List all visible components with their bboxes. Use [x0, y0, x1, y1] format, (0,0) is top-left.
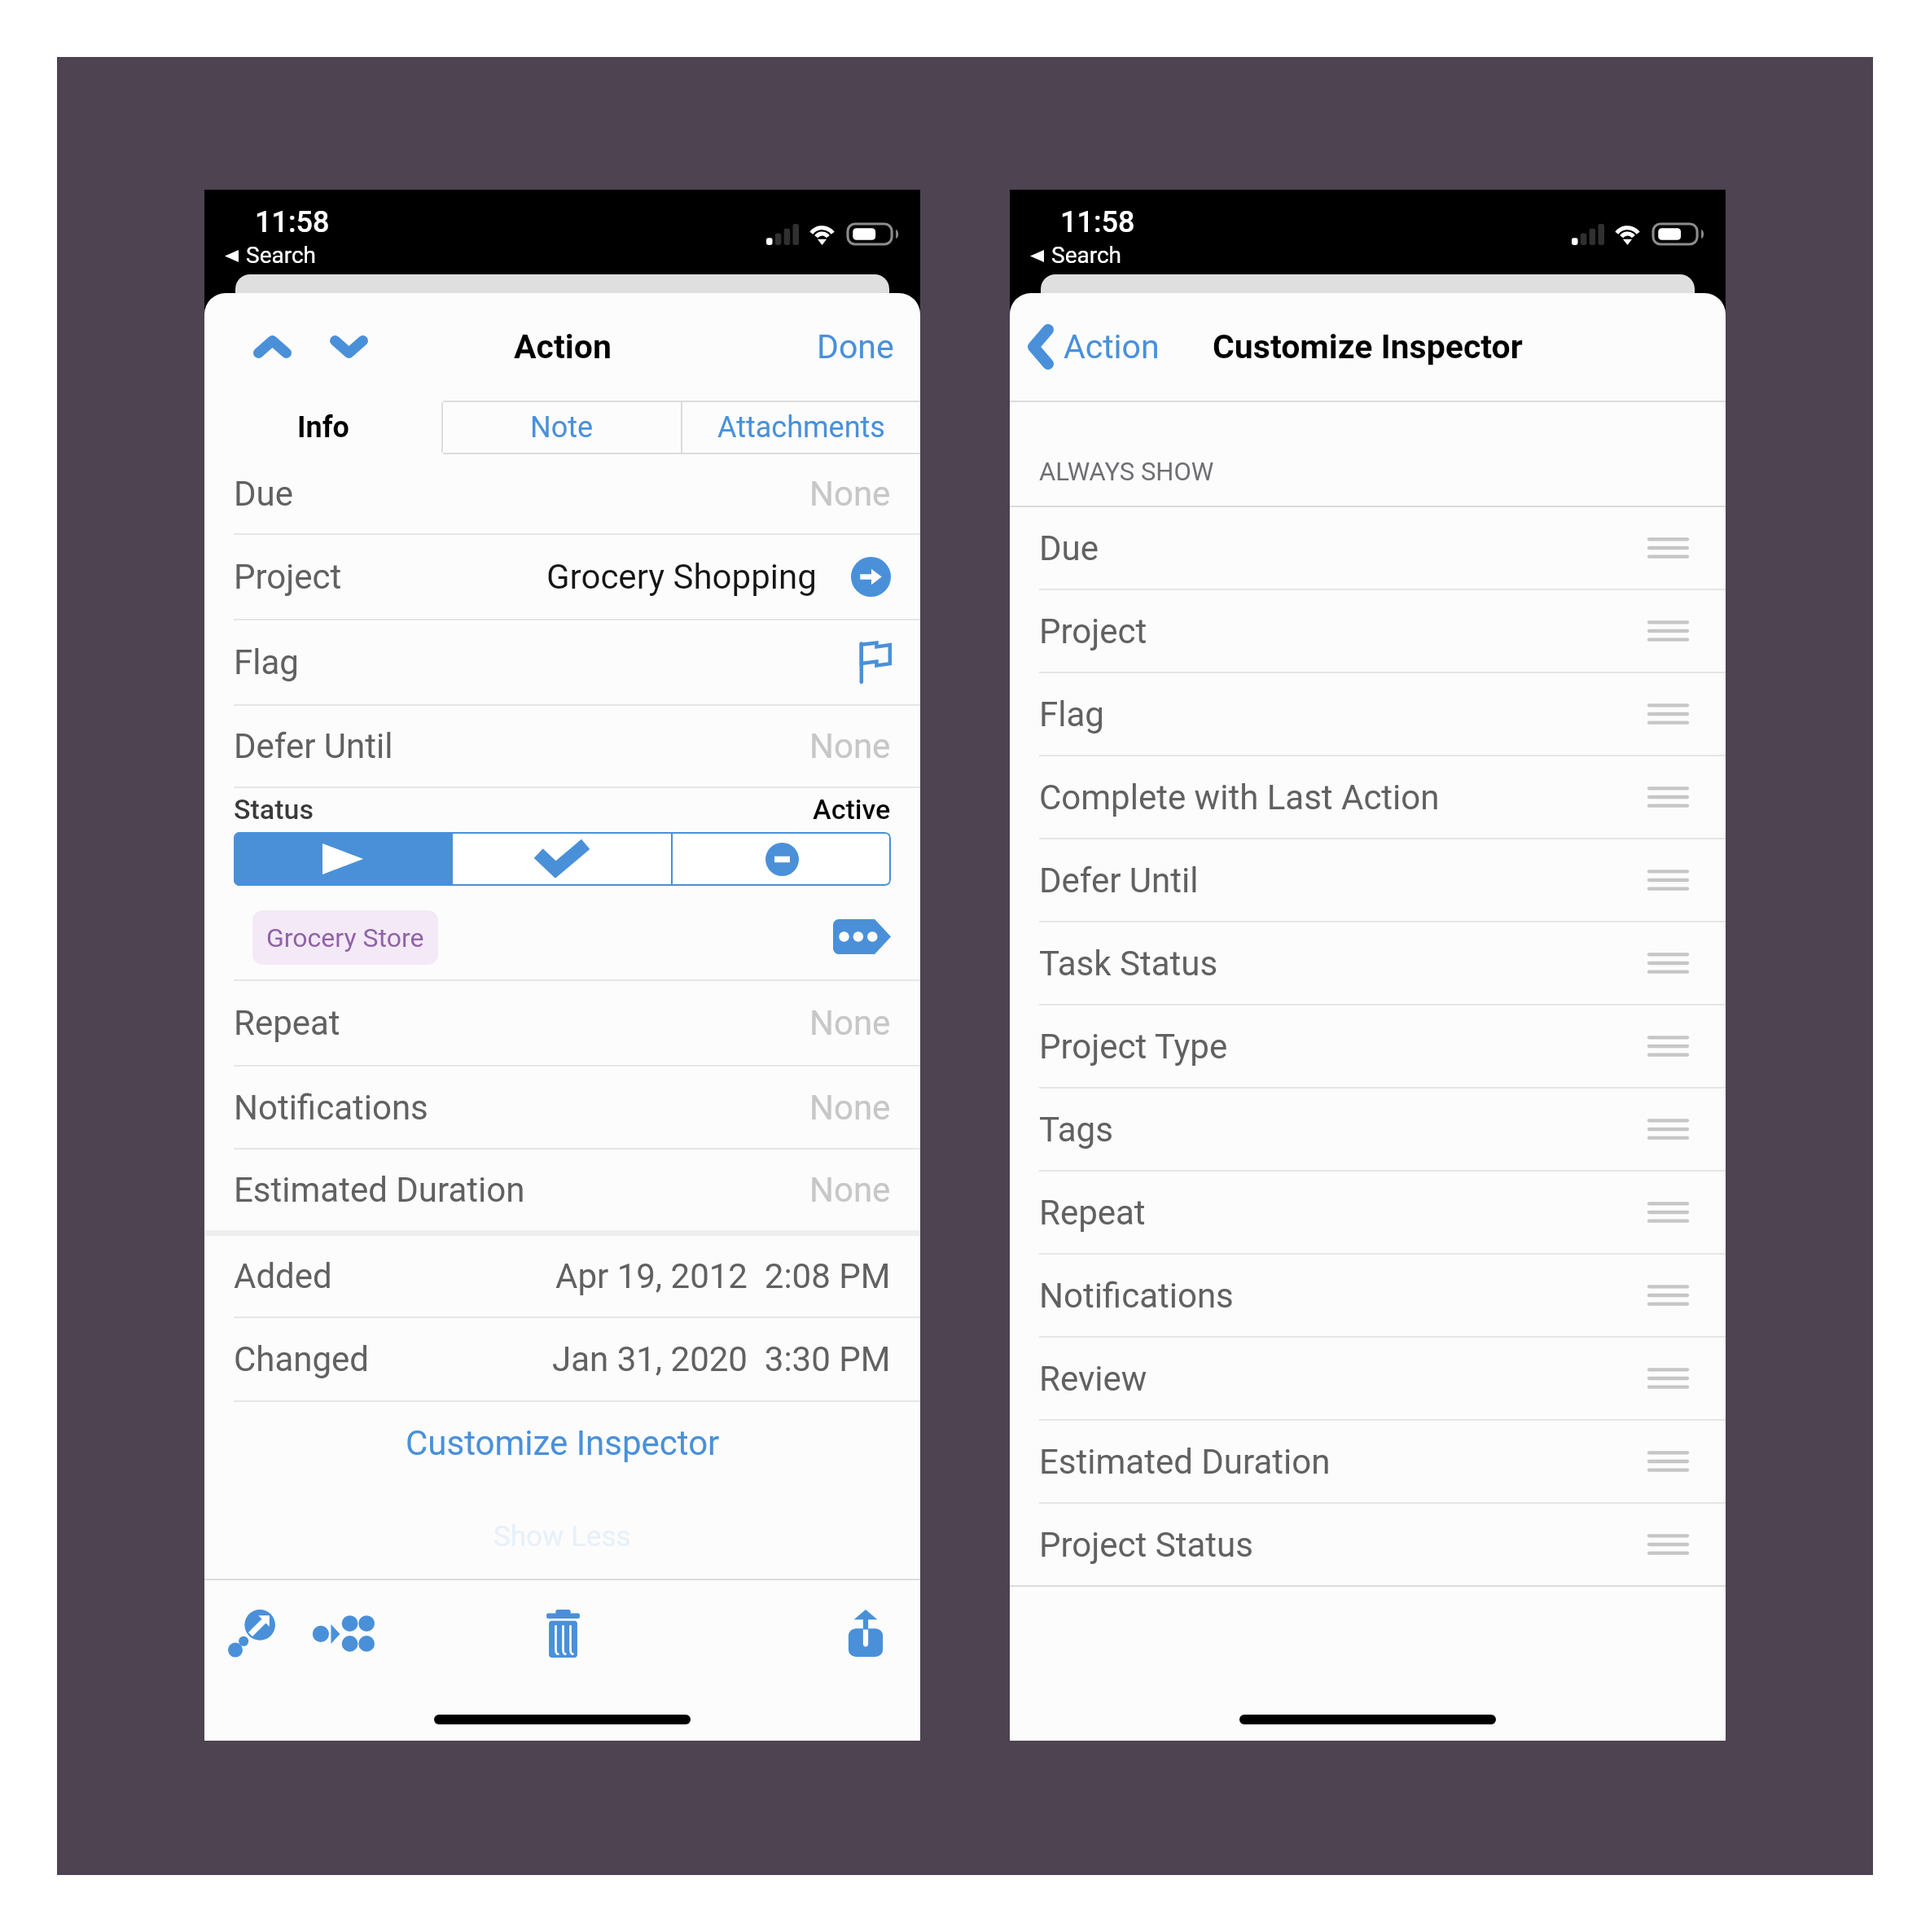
button[interactable]: Notifications	[1010, 1255, 1726, 1336]
staticText: Action	[514, 327, 612, 366]
staticText: Jan 31, 2020 3:30 PM	[552, 1339, 891, 1379]
staticText: Due	[234, 474, 293, 514]
button[interactable]: Changed	[204, 1318, 920, 1400]
button[interactable]: Reorder Defer Until	[1639, 852, 1696, 909]
button[interactable]: Repeat	[204, 981, 920, 1065]
button[interactable]: Estimated Duration	[1010, 1421, 1726, 1502]
button[interactable]: Action	[1010, 306, 1176, 388]
staticText: Flag	[1039, 694, 1104, 734]
staticText: Project	[234, 557, 342, 597]
button[interactable]: Flag	[1010, 673, 1726, 755]
staticText: Estimated Duration	[234, 1170, 525, 1210]
staticText: Project Type	[1039, 1027, 1228, 1067]
staticText: Customize Inspector	[406, 1423, 720, 1463]
staticText: None	[809, 726, 891, 766]
button[interactable]: Completed status	[453, 832, 671, 886]
button[interactable]: Project	[204, 535, 920, 619]
button[interactable]: Delete	[522, 1592, 603, 1674]
button[interactable]: Reorder Due	[1639, 519, 1696, 576]
staticText: ALWAYS SHOW	[1039, 457, 1214, 486]
button[interactable]: Grocery Store	[252, 910, 438, 965]
button[interactable]: Flag	[859, 638, 891, 687]
staticText: Notifications	[1039, 1276, 1234, 1316]
staticText: 11:58	[1060, 205, 1135, 239]
button[interactable]: Task Status	[1010, 922, 1726, 1004]
staticText: Apr 19, 2012 2:08 PM	[555, 1256, 891, 1296]
staticText: Complete with Last Action	[1039, 778, 1440, 817]
staticText: Flag	[234, 642, 299, 682]
button[interactable]: Notifications	[204, 1067, 920, 1148]
staticText: Done	[817, 327, 894, 366]
staticText: Attachments	[717, 410, 885, 445]
staticText: None	[809, 1170, 891, 1210]
button[interactable]: Reorder Complete with Last Action	[1639, 769, 1696, 826]
button[interactable]: Reorder Estimated Duration	[1639, 1433, 1696, 1490]
button[interactable]: Reorder Notifications	[1639, 1267, 1696, 1324]
button[interactable]: Info	[204, 402, 441, 453]
staticText: Action	[1064, 327, 1160, 366]
staticText: Repeat	[234, 1003, 340, 1043]
staticText: Added	[234, 1256, 332, 1296]
staticText: None	[809, 1003, 891, 1043]
staticText: Defer Until	[1039, 861, 1199, 900]
button[interactable]: Dropped status	[673, 832, 891, 886]
button[interactable]: Repeat	[1010, 1172, 1726, 1253]
button[interactable]: Reorder Task Status	[1639, 935, 1696, 992]
staticText: Active	[813, 793, 891, 826]
button[interactable]: Done	[789, 306, 920, 388]
button[interactable]: Reorder Project	[1639, 602, 1696, 659]
button[interactable]: Group	[303, 1592, 384, 1674]
staticText: Estimated Duration	[1039, 1442, 1331, 1482]
staticText: Status	[234, 793, 314, 826]
button[interactable]: Flag	[204, 620, 920, 704]
button[interactable]: Project Type	[1010, 1005, 1726, 1087]
staticText: Task Status	[1039, 944, 1218, 984]
staticText: None	[809, 474, 891, 514]
staticText: Project	[1039, 611, 1147, 651]
button[interactable]: Reorder Project Status	[1639, 1516, 1696, 1573]
staticText: Defer Until	[234, 726, 393, 766]
button[interactable]: Review	[1010, 1338, 1726, 1419]
staticText: Search	[246, 242, 317, 269]
staticText: Grocery Shopping	[546, 557, 817, 597]
button[interactable]: More tags	[833, 919, 891, 954]
button[interactable]: Defer Until	[1010, 839, 1726, 921]
button[interactable]: Share	[825, 1592, 906, 1674]
staticText: Due	[1039, 528, 1099, 568]
button[interactable]: Show Less	[204, 1483, 920, 1576]
button[interactable]: Reorder Flag	[1639, 686, 1696, 743]
button[interactable]: Reorder Tags	[1639, 1101, 1696, 1158]
button[interactable]: Added	[204, 1236, 920, 1316]
staticText: Search	[1051, 242, 1122, 269]
button[interactable]: Note	[443, 402, 681, 453]
staticText: 11:58	[255, 205, 330, 239]
button[interactable]: Attachments	[682, 402, 920, 453]
staticText: Note	[530, 410, 594, 445]
button[interactable]: Move	[211, 1592, 292, 1674]
button[interactable]: Due	[1010, 507, 1726, 589]
button[interactable]: Active status	[234, 832, 451, 886]
button[interactable]: Previous item	[234, 307, 310, 387]
button[interactable]: Reorder Repeat	[1639, 1184, 1696, 1241]
staticText: Changed	[234, 1339, 370, 1379]
button[interactable]: Due	[204, 454, 920, 533]
button[interactable]: Reorder Review	[1639, 1350, 1696, 1407]
staticText: Notifications	[234, 1088, 428, 1128]
button[interactable]: Defer Until	[204, 706, 920, 786]
staticText: Project Status	[1039, 1525, 1253, 1565]
button[interactable]: Complete with Last Action	[1010, 756, 1726, 838]
button[interactable]: Reorder Project Type	[1639, 1018, 1696, 1075]
button[interactable]: Project	[1010, 590, 1726, 672]
button[interactable]: Estimated Duration	[204, 1150, 920, 1230]
button[interactable]: Next item	[310, 307, 387, 387]
staticText: None	[809, 1088, 891, 1128]
staticText: Grocery Store	[266, 922, 424, 953]
staticText: Show Less	[493, 1520, 631, 1553]
button[interactable]: Customize Inspector	[204, 1402, 920, 1483]
staticText: Info	[297, 410, 349, 445]
staticText: Tags	[1039, 1110, 1113, 1150]
button[interactable]: Project Status	[1010, 1504, 1726, 1585]
button[interactable]: Tags	[1010, 1089, 1726, 1170]
staticText: Review	[1039, 1359, 1147, 1399]
staticText: Repeat	[1039, 1193, 1146, 1233]
